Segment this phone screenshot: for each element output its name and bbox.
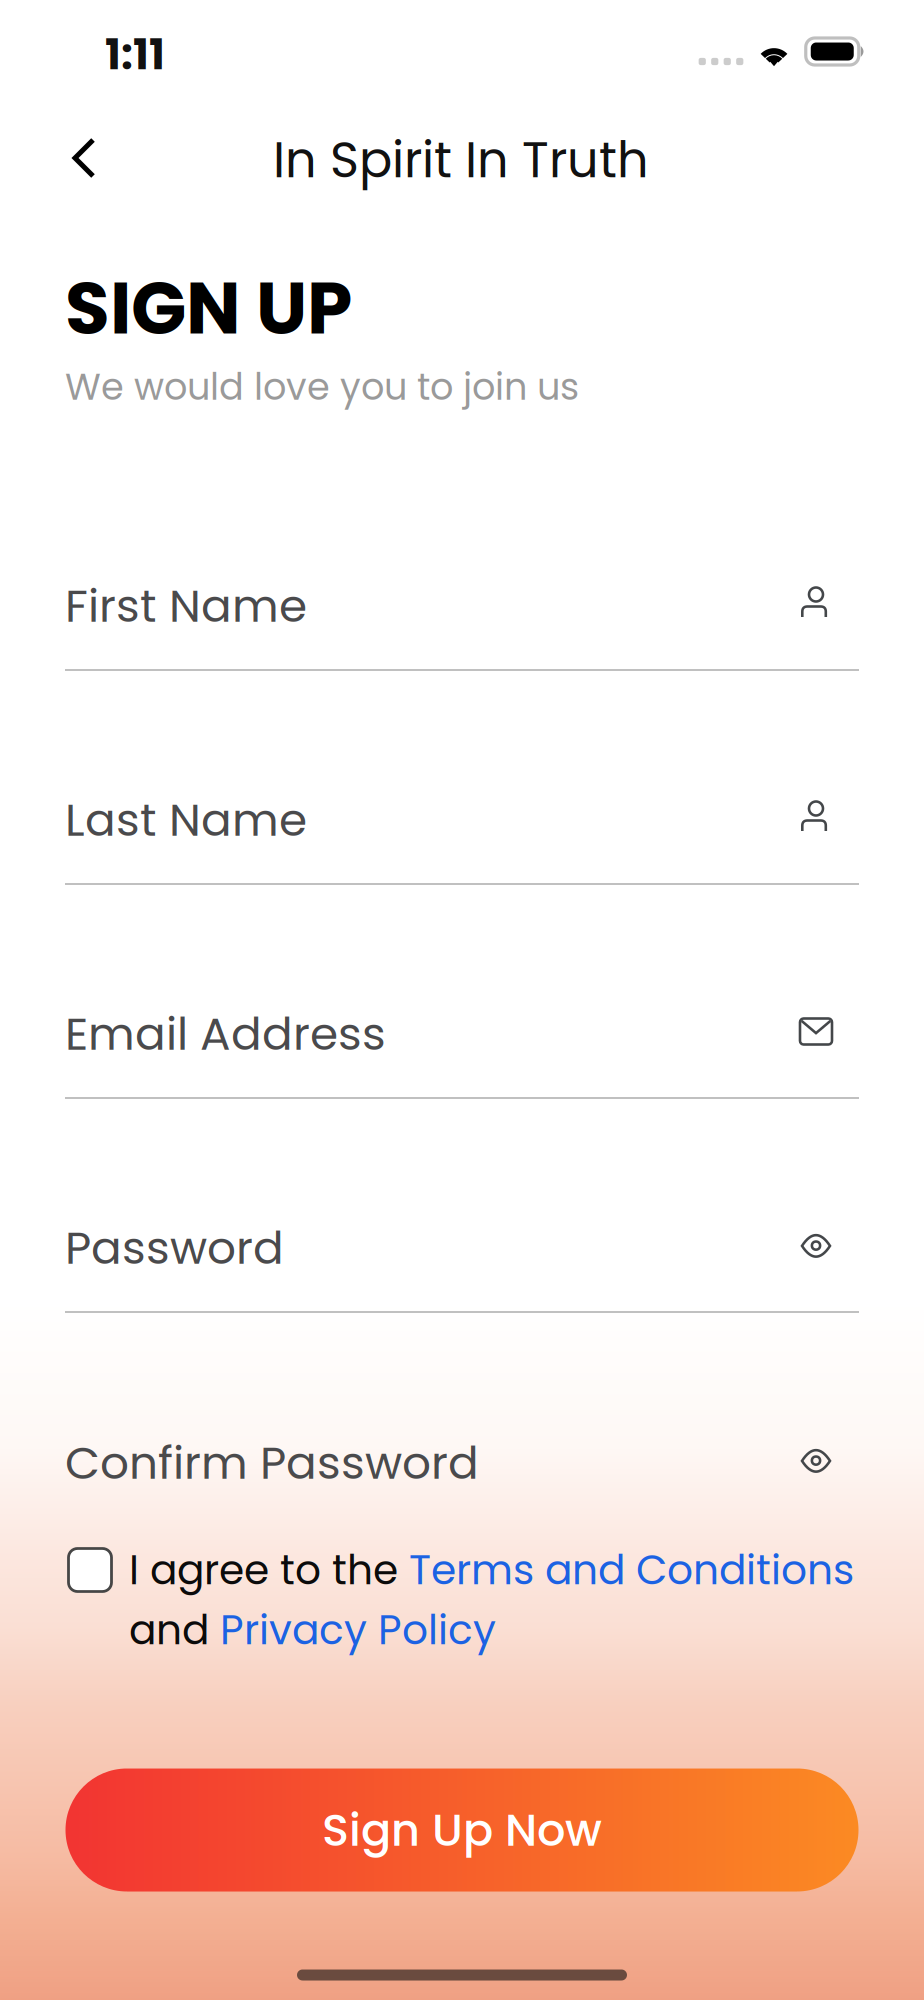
staticText: Terms and Conditions — [409, 1542, 854, 1598]
staticText: Sign Up Now — [322, 1799, 602, 1861]
button[interactable]: Sign Up Now — [65, 1768, 858, 1891]
staticText: In Spirit In Truth — [273, 125, 649, 195]
staticText: First Name — [65, 574, 307, 638]
button[interactable]: Back — [42, 116, 126, 200]
button[interactable]: Agree to terms and conditions — [61, 1541, 119, 1599]
staticText: Confirm Password — [65, 1431, 479, 1495]
staticText: Email Address — [65, 1002, 386, 1066]
staticText: Privacy Policy — [220, 1601, 496, 1658]
staticText: Last Name — [65, 788, 307, 852]
staticText: and — [129, 1601, 220, 1658]
button[interactable]: Privacy Policy — [220, 1601, 496, 1658]
staticText: I agree to the — [129, 1542, 409, 1598]
staticText: Password — [65, 1216, 284, 1280]
staticText: SIGN UP — [65, 257, 352, 359]
staticText: We would love you to join us — [65, 361, 579, 413]
button[interactable]: Terms and Conditions — [409, 1542, 854, 1598]
staticText: 1:11 — [105, 25, 165, 84]
